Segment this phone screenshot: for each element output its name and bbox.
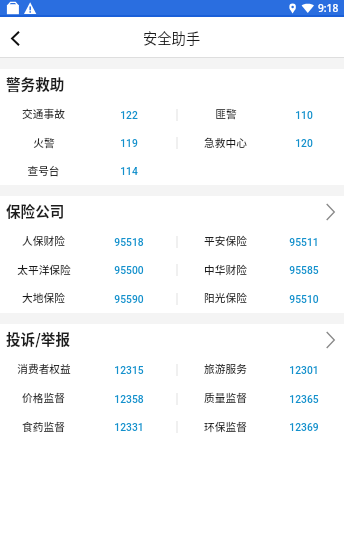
button[interactable]: 投诉/举报: [0, 324, 344, 355]
staticText: 质量监督: [204, 390, 247, 405]
staticText: 119: [120, 137, 138, 149]
button[interactable]: 查号台: [0, 157, 171, 185]
staticText: 交通事故: [22, 106, 65, 121]
button[interactable]: 旅游服务: [182, 355, 339, 384]
staticText: 12358: [114, 393, 144, 405]
button[interactable]: 匪警: [182, 100, 339, 129]
button[interactable]: 阳光保险: [182, 284, 339, 313]
staticText: 114: [120, 165, 138, 177]
staticText: 12331: [114, 421, 144, 433]
staticText: 95500: [114, 264, 144, 276]
staticText: 价格监督: [22, 390, 65, 405]
staticText: 12369: [289, 421, 319, 433]
button[interactable]: 保险公司: [0, 196, 344, 227]
staticText: 太平洋保险: [17, 262, 71, 277]
button[interactable]: 大地保险: [0, 284, 171, 313]
staticText: 警务救助: [6, 73, 65, 94]
staticText: 阳光保险: [204, 290, 247, 305]
staticText: 9:18: [318, 1, 339, 15]
button[interactable]: Back: [0, 18, 30, 58]
staticText: 投诉/举报: [6, 328, 71, 349]
button[interactable]: 平安保险: [182, 227, 339, 256]
button[interactable]: 交通事故: [0, 100, 171, 129]
button[interactable]: 太平洋保险: [0, 256, 171, 284]
staticText: 110: [295, 109, 313, 121]
staticText: 12315: [114, 364, 144, 376]
button[interactable]: 火警: [0, 129, 171, 157]
button[interactable]: 消费者权益: [0, 355, 171, 384]
button[interactable]: 中华财险: [182, 256, 339, 284]
button[interactable]: 价格监督: [0, 384, 171, 413]
staticText: 中华财险: [204, 262, 247, 277]
staticText: 平安保险: [204, 233, 247, 248]
button[interactable]: 人保财险: [0, 227, 171, 256]
staticText: 环保监督: [204, 419, 247, 434]
staticText: 95585: [289, 264, 319, 276]
button[interactable]: 食药监督: [0, 413, 171, 441]
staticText: 95590: [114, 293, 144, 305]
button[interactable]: 环保监督: [182, 413, 339, 441]
staticText: 安全助手: [143, 27, 201, 48]
staticText: 保险公司: [6, 200, 65, 221]
staticText: 消费者权益: [17, 361, 71, 376]
staticText: 急救中心: [204, 135, 247, 150]
staticText: 12365: [289, 393, 319, 405]
button[interactable]: 急救中心: [182, 129, 339, 157]
button[interactable]: 质量监督: [182, 384, 339, 413]
staticText: 查号台: [27, 163, 60, 178]
staticText: 122: [120, 109, 138, 121]
staticText: 大地保险: [22, 290, 65, 305]
staticText: 火警: [33, 135, 55, 150]
staticText: 食药监督: [22, 419, 65, 434]
staticText: 12301: [289, 364, 319, 376]
staticText: 旅游服务: [204, 361, 247, 376]
staticText: 匪警: [215, 106, 237, 121]
staticText: 95518: [114, 236, 144, 248]
staticText: 人保财险: [22, 233, 65, 248]
staticText: 95511: [289, 236, 319, 248]
staticText: 120: [295, 137, 313, 149]
staticText: 95510: [289, 293, 319, 305]
